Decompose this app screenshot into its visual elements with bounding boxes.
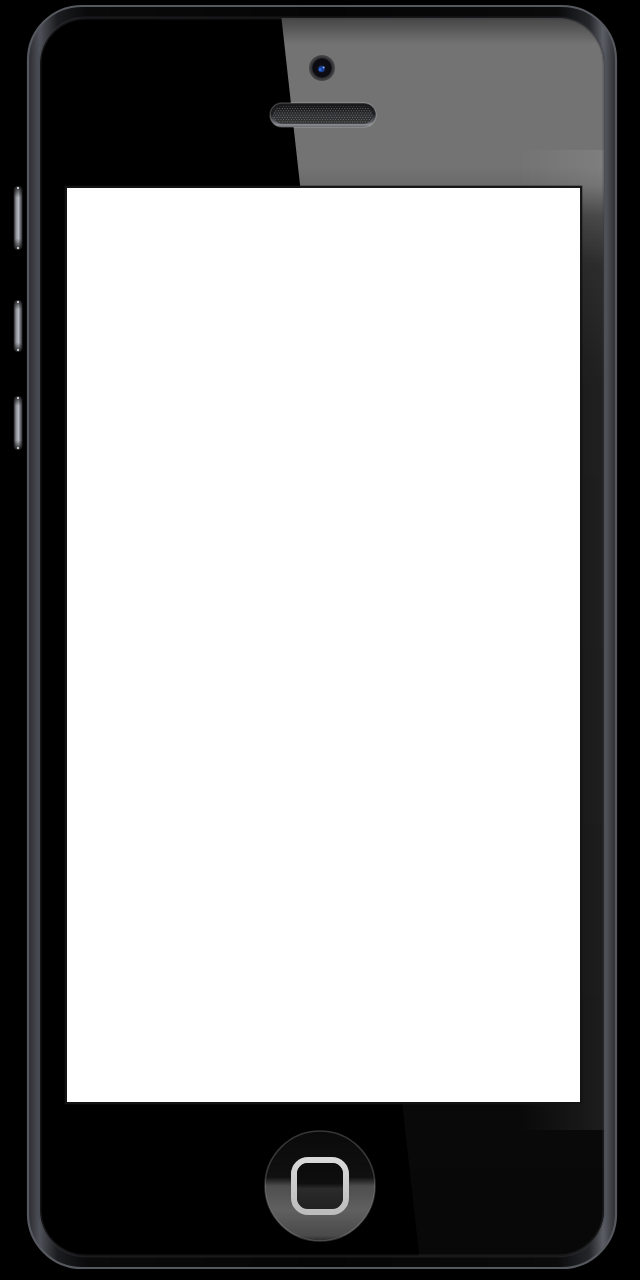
button[interactable]: Phone screen (0, 0, 640, 1280)
